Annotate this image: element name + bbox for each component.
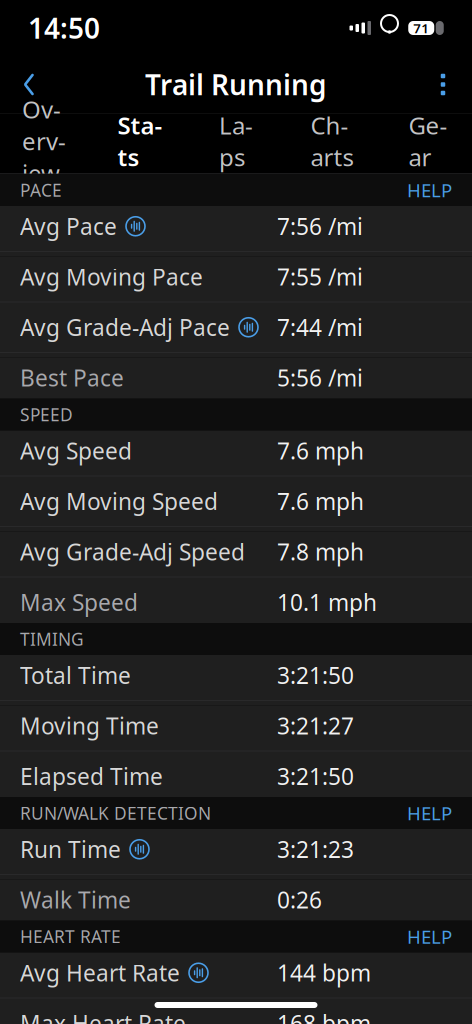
staticText: 7:44 /mi <box>277 312 363 342</box>
button[interactable]: Charts <box>308 113 356 173</box>
staticText: HELP <box>407 801 452 825</box>
button[interactable]: Total Time <box>0 655 472 705</box>
staticText: TIMING <box>20 627 84 650</box>
staticText: 10.1 mph <box>277 587 377 617</box>
button[interactable]: HELP <box>407 178 452 202</box>
staticText: Laps <box>219 109 253 173</box>
staticText: Stats <box>117 109 162 173</box>
staticText: Walk Time <box>20 885 131 915</box>
button[interactable]: Walk Time <box>0 879 472 920</box>
button[interactable]: HELP <box>407 924 452 949</box>
button[interactable]: Avg Grade-Adj Pace <box>0 307 472 357</box>
staticText: 71 <box>413 19 429 37</box>
staticText: Avg Heart Rate <box>20 958 180 988</box>
staticText: Avg Grade-Adj Speed <box>20 537 245 567</box>
button[interactable]: Avg Moving Pace <box>0 256 472 307</box>
staticText: 7:56 /mi <box>277 211 363 241</box>
staticText: 7.6 mph <box>277 486 364 516</box>
button[interactable]: Avg Moving Speed <box>0 481 472 531</box>
staticText: Max Speed <box>20 587 138 617</box>
button[interactable]: Avg Speed <box>0 430 472 481</box>
staticText: 7.6 mph <box>277 436 364 466</box>
staticText: RUN/WALK DETECTION <box>20 801 211 824</box>
staticText: 144 bpm <box>277 958 371 988</box>
staticText: Best Pace <box>20 363 124 393</box>
button[interactable]: Max Heart Rate <box>0 1003 472 1024</box>
staticText: 3:21:23 <box>277 834 354 864</box>
staticText: 7.8 mph <box>277 537 364 567</box>
staticText: 168 bpm <box>277 1008 371 1024</box>
staticText: Trail Running <box>145 66 327 103</box>
button[interactable]: Laps <box>212 113 260 173</box>
button[interactable]: Avg Pace <box>0 206 472 256</box>
button[interactable]: Avg Heart Rate <box>0 952 472 1003</box>
staticText: HEART RATE <box>20 925 121 948</box>
button[interactable]: Back <box>12 64 46 104</box>
staticText: HELP <box>407 178 452 202</box>
button[interactable]: HELP <box>407 801 452 825</box>
staticText: 3:21:50 <box>277 660 354 690</box>
staticText: 3:21:27 <box>277 711 354 741</box>
button[interactable]: Moving Time <box>0 705 472 756</box>
button[interactable]: Stats <box>116 113 164 173</box>
staticText: Avg Moving Speed <box>20 486 218 516</box>
staticText: PACE <box>20 178 62 201</box>
staticText: Moving Time <box>20 711 159 741</box>
button[interactable]: More options <box>426 64 460 104</box>
staticText: SPEED <box>20 403 73 426</box>
staticText: Avg Grade-Adj Pace <box>20 312 230 342</box>
staticText: Overview <box>22 93 66 189</box>
button[interactable]: Elapsed Time <box>0 756 472 797</box>
staticText: Elapsed Time <box>20 761 163 791</box>
staticText: 5:56 /mi <box>277 363 363 393</box>
staticText: Gear <box>408 109 447 173</box>
staticText: 3:21:50 <box>277 761 354 791</box>
staticText: Run Time <box>20 834 121 864</box>
button[interactable]: Gear <box>404 113 452 173</box>
staticText: Total Time <box>20 660 131 690</box>
button[interactable]: Overview <box>20 113 68 173</box>
staticText: HELP <box>407 924 452 949</box>
button[interactable]: Run Time <box>0 829 472 879</box>
staticText: Avg Pace <box>20 211 117 241</box>
staticText: 14:50 <box>28 9 100 47</box>
button[interactable]: Best Pace <box>0 357 472 398</box>
staticText: 0:26 <box>277 885 322 915</box>
staticText: 7:55 /mi <box>277 262 363 292</box>
button[interactable]: Avg Grade-Adj Speed <box>0 531 472 582</box>
staticText: Charts <box>310 109 353 173</box>
button[interactable]: Max Speed <box>0 582 472 623</box>
staticText: Avg Moving Pace <box>20 262 203 292</box>
staticText: Avg Speed <box>20 436 132 466</box>
staticText: Max Heart Rate <box>20 1008 186 1024</box>
